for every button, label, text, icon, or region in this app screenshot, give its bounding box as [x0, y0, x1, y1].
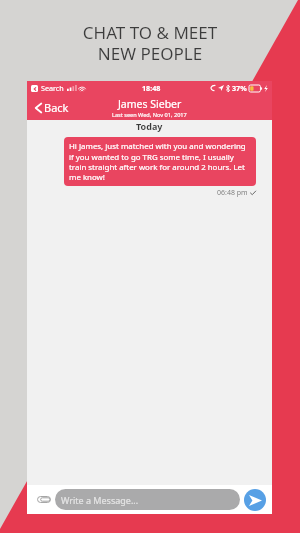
staticText: Hi James, just matched with you and wond…: [69, 141, 251, 182]
button[interactable]: Search: [31, 83, 86, 93]
button[interactable]: Write a Message...: [55, 489, 240, 510]
staticText: 37%: [232, 83, 247, 93]
staticText: Write a Message...: [61, 494, 139, 506]
staticText: Back: [44, 100, 69, 115]
staticText: CHAT TO & MEET NEW PEOPLE: [0, 21, 300, 65]
staticText: Last seen Wed, Nov 01, 2017: [112, 111, 187, 119]
staticText: Today: [136, 120, 163, 132]
staticText: 18:48: [142, 83, 161, 93]
button[interactable]: Send message: [244, 489, 266, 511]
button[interactable]: Hi James, just matched with you and wond…: [64, 137, 256, 186]
staticText: Search: [41, 83, 64, 93]
button[interactable]: Attach file: [36, 491, 52, 507]
staticText: James Sieber: [118, 97, 182, 111]
staticText: 06:48 pm: [217, 188, 248, 198]
button[interactable]: Back: [35, 100, 69, 115]
